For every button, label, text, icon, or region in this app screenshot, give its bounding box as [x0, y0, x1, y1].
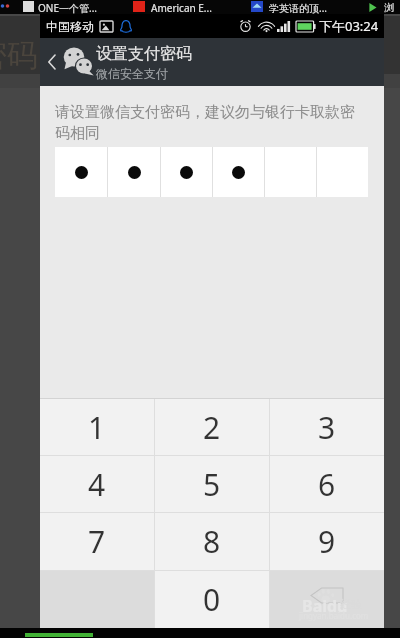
- staticText: 经验: [340, 597, 362, 611]
- staticText: 9: [318, 521, 336, 562]
- button[interactable]: 8: [155, 513, 269, 570]
- staticText: 5: [203, 464, 221, 505]
- staticText: 请设置微信支付密码，建议勿与银行卡取款密码相同: [55, 103, 368, 142]
- staticText: 密码: [0, 36, 38, 75]
- staticText: 0: [203, 579, 221, 620]
- button[interactable]: 0: [155, 571, 269, 628]
- button[interactable]: [213, 147, 264, 197]
- button[interactable]: [161, 147, 212, 197]
- staticText: Baidu: [302, 595, 348, 617]
- button[interactable]: 3: [270, 399, 384, 455]
- staticText: American E...: [151, 1, 212, 15]
- staticText: 4: [88, 464, 106, 505]
- staticText: 下午03:24: [319, 17, 379, 35]
- staticText: 3: [318, 407, 336, 448]
- button[interactable]: 5: [155, 456, 269, 512]
- staticText: 2: [203, 407, 221, 448]
- button[interactable]: 9: [270, 513, 384, 570]
- button[interactable]: 1: [40, 399, 154, 455]
- staticText: 1: [88, 407, 106, 448]
- staticText: 中国移动: [46, 19, 94, 34]
- button[interactable]: 6: [270, 456, 384, 512]
- button[interactable]: [108, 147, 160, 197]
- staticText: 学英语的顶...: [269, 1, 328, 15]
- button[interactable]: Back: [40, 38, 64, 86]
- button[interactable]: [55, 147, 107, 197]
- button[interactable]: 4: [40, 456, 154, 512]
- staticText: 8: [203, 521, 221, 562]
- button[interactable]: 2: [155, 399, 269, 455]
- staticText: 6: [318, 464, 336, 505]
- button[interactable]: 7: [40, 513, 154, 570]
- staticText: ONE一个管...: [38, 1, 98, 15]
- staticText: 7: [88, 521, 106, 562]
- staticText: 微信安全支付: [96, 66, 168, 81]
- staticText: 设置支付密码: [96, 44, 192, 64]
- staticText: 浏: [384, 1, 394, 14]
